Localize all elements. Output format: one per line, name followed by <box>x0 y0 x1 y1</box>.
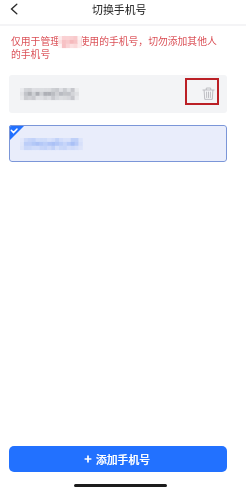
button[interactable]: Delete <box>9 75 227 113</box>
button[interactable]: Delete <box>185 78 219 105</box>
staticText: 仅用于管理本人使用的手机号，切勿添加其他人的手机号 <box>11 34 218 61</box>
staticText: 添加手机号 <box>96 451 150 467</box>
button[interactable]: 添加手机号 <box>9 446 227 472</box>
button[interactable]: Back <box>2 0 26 21</box>
staticText: 切换手机号 <box>92 1 147 17</box>
button[interactable] <box>9 125 227 162</box>
